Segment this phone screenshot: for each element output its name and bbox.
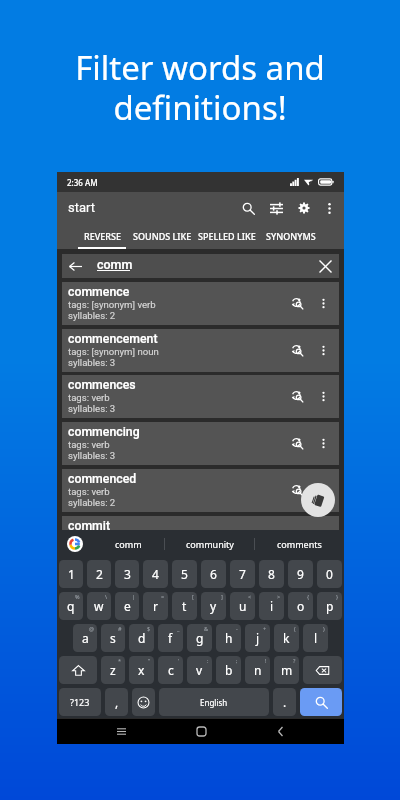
button[interactable]: w: [87, 592, 111, 620]
staticText: 0: [326, 566, 333, 582]
button[interactable]: More options: [313, 527, 333, 547]
staticText: 8: [268, 566, 275, 582]
staticText: syllables: 3: [68, 403, 116, 414]
button[interactable]: .: [273, 688, 296, 716]
button[interactable]: Search this word: [287, 386, 307, 406]
button[interactable]: Home: [186, 719, 216, 744]
button[interactable]: 3: [115, 560, 139, 588]
button[interactable]: h: [216, 624, 241, 652]
button[interactable]: Open dictionary: [301, 483, 335, 517]
button[interactable]: Clear: [319, 260, 332, 273]
staticText: REVERSE: [84, 230, 121, 242]
staticText: l: [314, 630, 318, 646]
button[interactable]: e: [115, 592, 139, 620]
button[interactable]: SOUNDS LIKE: [129, 222, 195, 249]
button[interactable]: More options: [313, 480, 333, 500]
button[interactable]: Back: [69, 260, 82, 273]
button[interactable]: 8: [259, 560, 284, 588]
button[interactable]: Filter: [262, 194, 290, 222]
button[interactable]: 2: [87, 560, 111, 588]
button[interactable]: Back: [265, 719, 295, 744]
staticText: commit: [68, 519, 111, 533]
staticText: ]: [221, 593, 223, 600]
staticText: ": [148, 657, 151, 664]
button[interactable]: r: [143, 592, 168, 620]
staticText: English: [200, 697, 228, 708]
button[interactable]: commenced: [68, 469, 333, 512]
button[interactable]: v: [187, 656, 212, 684]
staticText: +: [263, 625, 267, 632]
staticText: 4: [152, 566, 159, 582]
button[interactable]: y: [201, 592, 226, 620]
staticText: y: [210, 598, 217, 614]
staticText: v: [196, 662, 203, 678]
button[interactable]: More options: [313, 340, 333, 360]
button[interactable]: 9: [288, 560, 313, 588]
staticText: ;: [236, 657, 238, 664]
button[interactable]: Backspace: [303, 656, 342, 684]
button[interactable]: 6: [201, 560, 226, 588]
button[interactable]: c: [158, 656, 183, 684]
button[interactable]: Settings: [290, 194, 318, 222]
button[interactable]: i: [259, 592, 284, 620]
staticText: syllables: 2: [68, 310, 116, 321]
button[interactable]: commencement: [68, 329, 333, 372]
staticText: syllables: 3: [68, 357, 116, 368]
button[interactable]: Search this word: [287, 480, 307, 500]
staticText: _: [177, 625, 180, 632]
button[interactable]: p: [317, 592, 342, 620]
button[interactable]: j: [245, 624, 270, 652]
button[interactable]: x: [129, 656, 154, 684]
button[interactable]: Search this word: [287, 433, 307, 453]
staticText: commenced: [68, 472, 137, 486]
button[interactable]: Search this word: [287, 340, 307, 360]
button[interactable]: f: [158, 624, 183, 652]
button[interactable]: g: [187, 624, 212, 652]
staticText: %: [75, 593, 80, 600]
button[interactable]: More options: [313, 433, 333, 453]
button[interactable]: n: [245, 656, 270, 684]
staticText: tags: verb: [68, 533, 110, 544]
button[interactable]: s: [101, 624, 125, 652]
button[interactable]: 7: [230, 560, 255, 588]
button[interactable]: More options: [313, 293, 333, 313]
button[interactable]: d: [129, 624, 154, 652]
button[interactable]: More options: [313, 386, 333, 406]
button[interactable]: u: [230, 592, 255, 620]
button[interactable]: m: [274, 656, 299, 684]
button[interactable]: Search: [300, 688, 342, 716]
button[interactable]: SPELLED LIKE: [192, 222, 262, 249]
button[interactable]: Recents: [106, 719, 136, 744]
button[interactable]: commence: [68, 282, 333, 325]
button[interactable]: Search: [234, 194, 262, 222]
button[interactable]: 4: [143, 560, 168, 588]
staticText: 3: [124, 566, 131, 582]
button[interactable]: English: [159, 688, 269, 716]
button[interactable]: b: [216, 656, 241, 684]
staticText: n: [254, 662, 262, 678]
button[interactable]: Search this word: [287, 527, 307, 547]
button[interactable]: More options: [318, 194, 341, 222]
button[interactable]: Shift: [59, 656, 97, 684]
button[interactable]: k: [274, 624, 299, 652]
button[interactable]: commit: [68, 516, 333, 559]
staticText: h: [225, 630, 233, 646]
button[interactable]: Search this word: [287, 293, 307, 313]
button[interactable]: Emoji: [132, 688, 155, 716]
button[interactable]: z: [101, 656, 125, 684]
button[interactable]: ?123: [59, 688, 101, 716]
button[interactable]: commencing: [68, 422, 333, 465]
button[interactable]: o: [288, 592, 313, 620]
button[interactable]: a: [73, 624, 97, 652]
button[interactable]: 1: [59, 560, 83, 588]
button[interactable]: commences: [68, 375, 333, 418]
button[interactable]: ,: [105, 688, 128, 716]
button[interactable]: t: [172, 592, 197, 620]
button[interactable]: q: [59, 592, 83, 620]
button[interactable]: REVERSE: [78, 222, 126, 249]
button[interactable]: 0: [317, 560, 342, 588]
button[interactable]: SYNONYMS: [260, 222, 322, 249]
button[interactable]: l: [303, 624, 328, 652]
staticText: k: [283, 630, 290, 646]
button[interactable]: 5: [172, 560, 197, 588]
